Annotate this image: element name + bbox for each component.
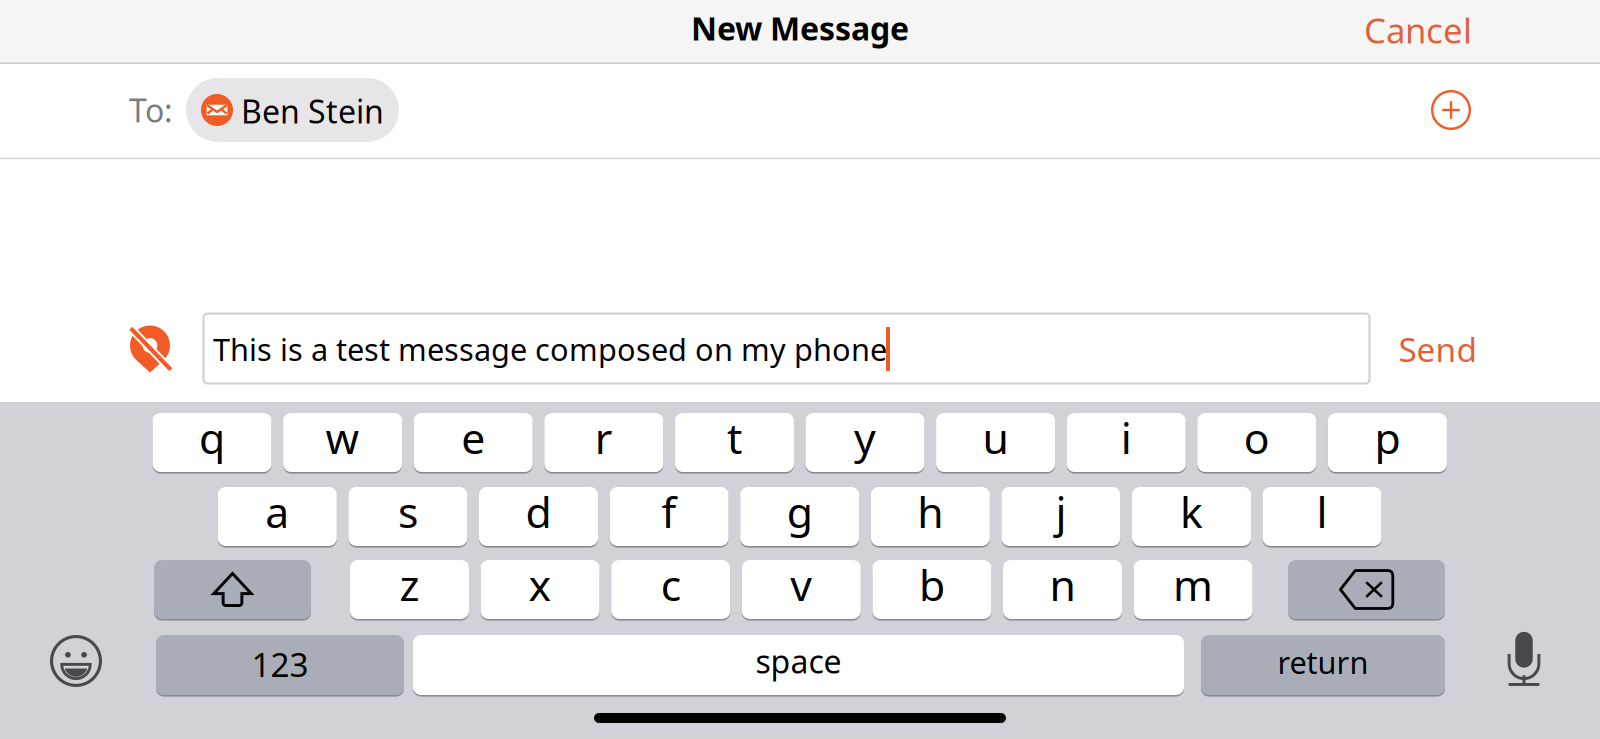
staticText: b — [919, 556, 945, 613]
button[interactable]: c — [611, 560, 730, 619]
button[interactable]: a — [218, 487, 337, 546]
button[interactable]: space — [413, 635, 1184, 695]
staticText: Send — [1398, 327, 1477, 371]
staticText: n — [1049, 556, 1075, 613]
staticText: 123 — [251, 642, 308, 686]
button[interactable]: Cancel — [1272, 0, 1472, 61]
button[interactable]: f — [610, 487, 729, 546]
button[interactable]: t — [675, 413, 794, 472]
staticText: w — [326, 409, 360, 466]
button[interactable]: y — [805, 413, 924, 472]
staticText: return — [1277, 642, 1368, 682]
button[interactable]: Delete — [1288, 560, 1445, 619]
staticText: e — [461, 409, 485, 466]
button[interactable]: Emoji — [36, 621, 116, 701]
button[interactable]: x — [481, 560, 600, 619]
staticText: c — [661, 556, 681, 613]
button[interactable]: g — [740, 487, 859, 546]
button[interactable]: j — [1001, 487, 1120, 546]
staticText: l — [1317, 483, 1328, 540]
staticText: New Message — [691, 7, 909, 49]
button[interactable]: b — [872, 560, 991, 619]
button[interactable]: Shift — [154, 560, 311, 619]
staticText: o — [1244, 409, 1270, 466]
staticText: Cancel — [1364, 7, 1472, 53]
staticText: k — [1180, 483, 1203, 540]
staticText: m — [1173, 556, 1213, 613]
staticText: u — [983, 409, 1009, 466]
button[interactable]: n — [1003, 560, 1122, 619]
staticText: r — [595, 409, 613, 466]
staticText: y — [854, 409, 876, 466]
staticText: q — [199, 409, 225, 466]
staticText: p — [1374, 409, 1400, 466]
staticText: j — [1055, 483, 1066, 540]
button[interactable]: d — [479, 487, 598, 546]
staticText: i — [1121, 409, 1132, 466]
staticText: g — [787, 483, 813, 540]
button[interactable]: i — [1067, 413, 1186, 472]
button[interactable]: Dictation — [1484, 619, 1564, 699]
button[interactable]: r — [544, 413, 663, 472]
staticText: x — [529, 556, 552, 613]
button[interactable]: q — [152, 413, 271, 472]
button[interactable]: v — [742, 560, 861, 619]
button[interactable]: u — [936, 413, 1055, 472]
button[interactable]: Ben Stein — [186, 78, 399, 142]
staticText: a — [265, 483, 289, 540]
button[interactable]: s — [348, 487, 467, 546]
button[interactable]: p — [1328, 413, 1447, 472]
button[interactable]: e — [414, 413, 533, 472]
staticText: s — [398, 483, 418, 540]
button[interactable]: Add Contact — [1416, 75, 1486, 145]
staticText: This is a test message composed on my ph… — [213, 329, 887, 369]
button[interactable]: w — [283, 413, 402, 472]
button[interactable]: z — [350, 560, 469, 619]
button[interactable]: k — [1132, 487, 1251, 546]
staticText: f — [662, 483, 677, 540]
button[interactable]: h — [871, 487, 990, 546]
staticText: space — [755, 640, 841, 682]
button[interactable]: 123 — [156, 635, 404, 695]
button[interactable]: l — [1263, 487, 1382, 546]
staticText: h — [917, 483, 943, 540]
staticText: t — [727, 409, 742, 466]
staticText: To: — [129, 89, 173, 131]
button[interactable]: o — [1197, 413, 1316, 472]
button[interactable]: Send — [1368, 313, 1508, 384]
button[interactable]: m — [1134, 560, 1253, 619]
button[interactable]: return — [1201, 635, 1445, 695]
staticText: Ben Stein — [241, 90, 384, 132]
staticText: z — [399, 556, 419, 613]
staticText: d — [525, 483, 551, 540]
staticText: v — [790, 556, 812, 613]
